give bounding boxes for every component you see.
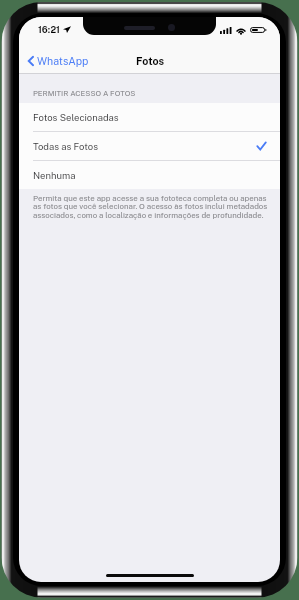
staticText: WhatsApp <box>37 55 89 67</box>
staticText: Permita que este app acesse a sua fotote… <box>33 193 268 220</box>
button[interactable]: Fotos Selecionadas <box>19 103 280 131</box>
staticText: PERMITIR ACESSO A FOTOS <box>33 89 136 98</box>
staticText: Fotos <box>136 55 165 67</box>
staticText: 16:21 <box>38 24 60 35</box>
staticText: Todas as Fotos <box>33 141 98 152</box>
button[interactable]: Todas as Fotos <box>19 132 280 160</box>
staticText: Nenhuma <box>33 170 76 181</box>
button[interactable]: WhatsApp <box>23 52 94 70</box>
button[interactable]: Nenhuma <box>19 161 280 189</box>
staticText: Fotos Selecionadas <box>33 112 119 123</box>
